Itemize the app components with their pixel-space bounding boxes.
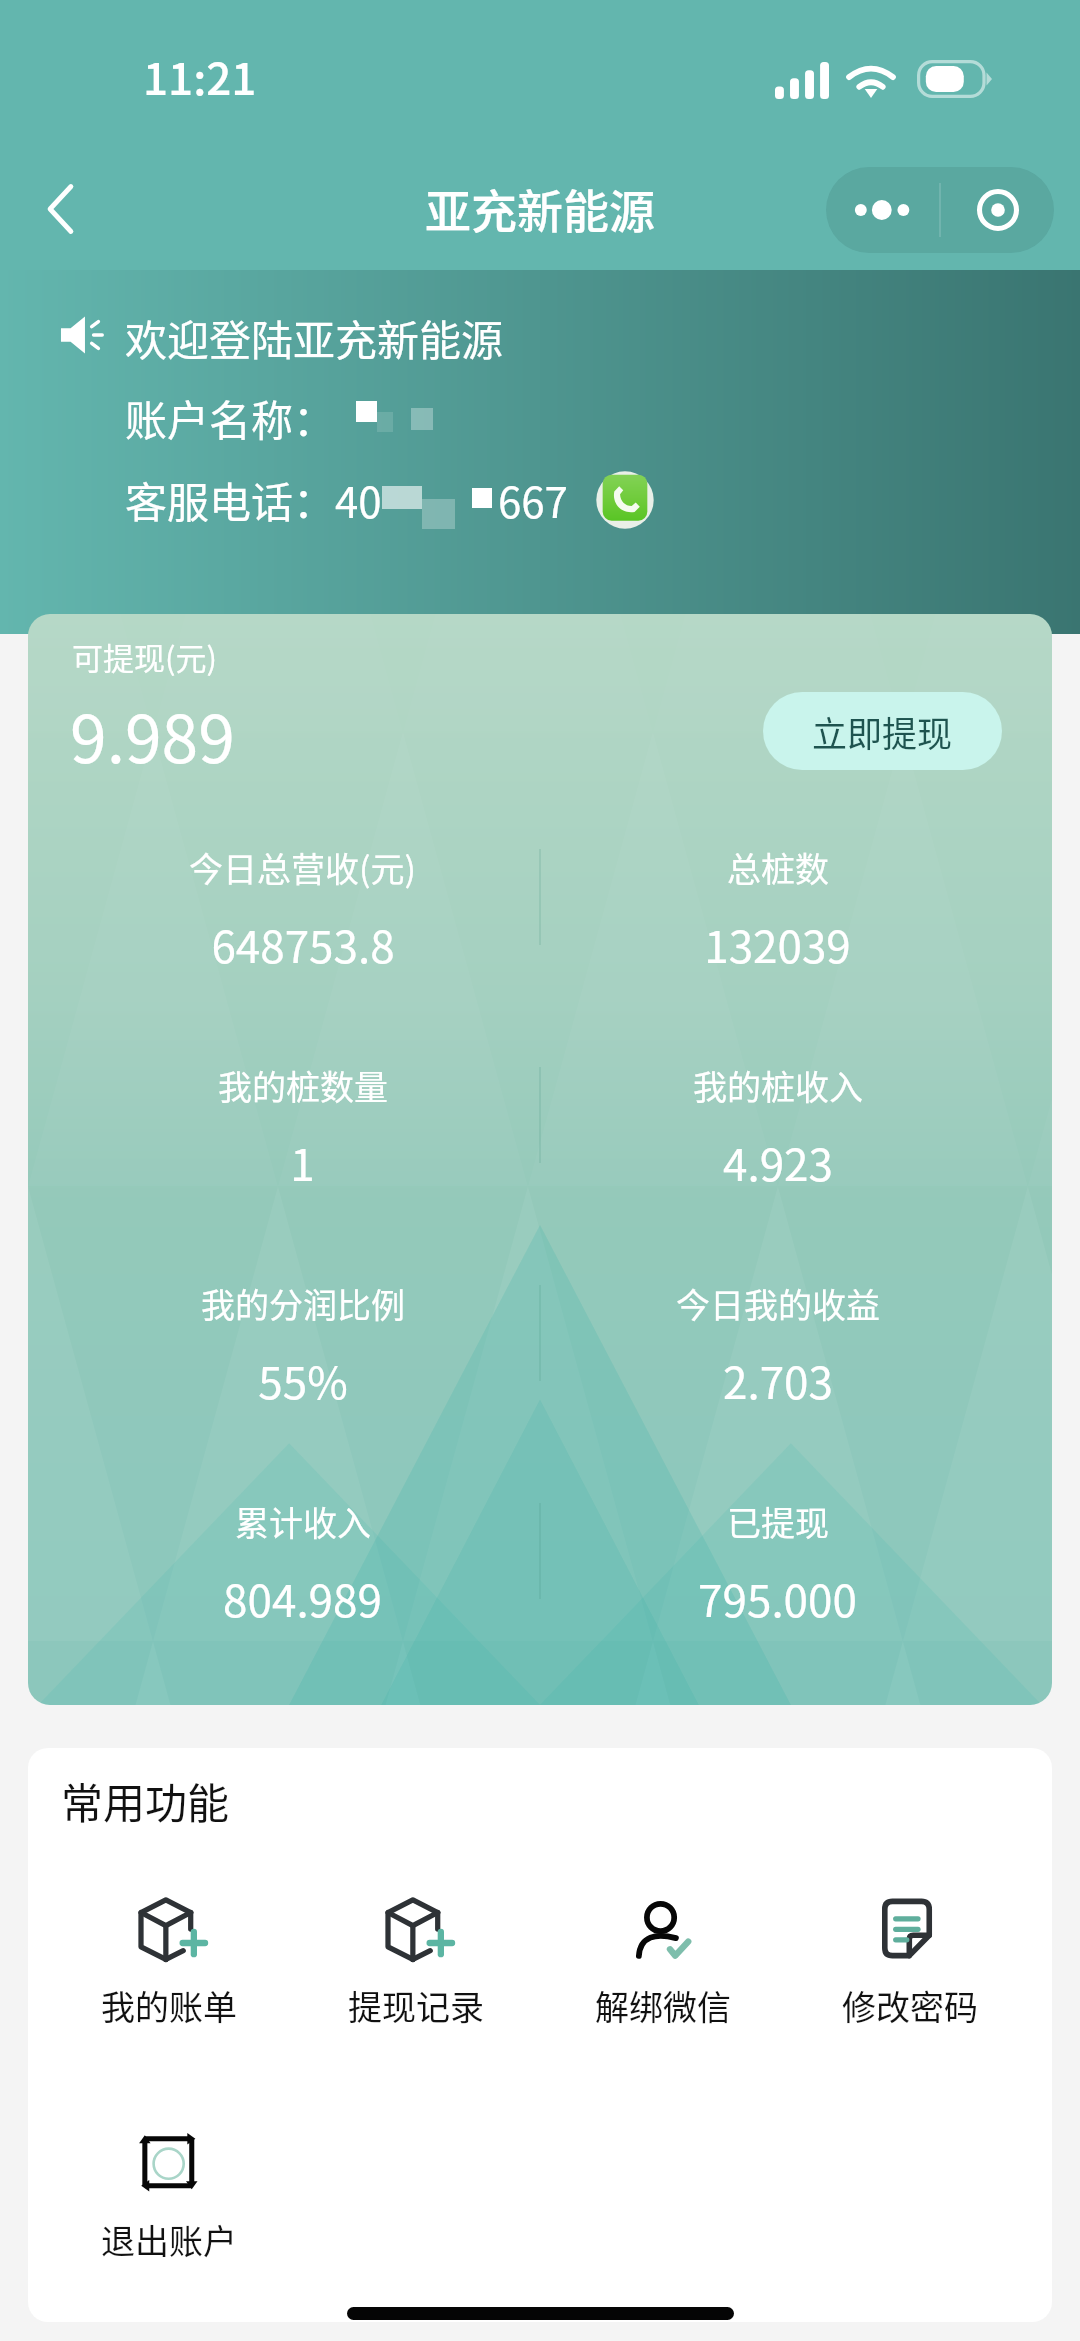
button[interactable]: 立即提现 [763, 692, 1002, 770]
button[interactable]: 解绑微信 [539, 1888, 786, 2036]
staticText: 亚充新能源 [425, 175, 655, 242]
staticText: 累计收入 [235, 1497, 371, 1546]
staticText: 667 [498, 469, 568, 530]
staticText: 我的账单 [101, 1981, 237, 2030]
staticText: 客服电话：40 [125, 469, 382, 530]
staticText: 总桩数 [727, 843, 829, 892]
button[interactable]: Close mini program [941, 167, 1054, 253]
staticText: 648753.8 [211, 912, 395, 973]
staticText: 今日我的收益 [676, 1279, 880, 1328]
staticText: 修改密码 [842, 1981, 978, 2030]
button[interactable]: 修改密码 [786, 1888, 1033, 2036]
staticText: 今日总营收(元) [189, 843, 416, 892]
button[interactable]: More options [826, 167, 939, 253]
button[interactable]: Back [16, 165, 104, 253]
button[interactable]: 我的账单 [45, 1888, 292, 2036]
staticText: 欢迎登陆亚充新能源 [125, 307, 504, 368]
staticText: 55% [258, 1348, 348, 1409]
button[interactable]: 退出账户 [45, 2122, 292, 2270]
staticText: 2.703 [723, 1348, 833, 1409]
staticText: 4.923 [723, 1130, 833, 1191]
staticText: 795.000 [698, 1566, 857, 1627]
staticText: 804.989 [223, 1566, 382, 1627]
staticText: 11:21 [143, 44, 257, 108]
staticText: 解绑微信 [595, 1981, 731, 2030]
staticText: 提现记录 [348, 1981, 484, 2030]
staticText: 我的桩收入 [693, 1061, 863, 1110]
staticText: 1 [290, 1130, 315, 1191]
staticText: 我的桩数量 [218, 1061, 388, 1110]
staticText: 132039 [704, 912, 851, 973]
staticText: 退出账户 [101, 2215, 237, 2264]
staticText: 我的分润比例 [201, 1279, 405, 1328]
staticText: 立即提现 [812, 706, 953, 757]
staticText: 常用功能 [61, 1770, 230, 1831]
button[interactable]: Call customer service [596, 471, 654, 529]
button[interactable]: 提现记录 [292, 1888, 539, 2036]
staticText: 9.989 [70, 686, 235, 782]
staticText: 账户名称： [125, 387, 336, 448]
staticText: 可提现(元) [72, 634, 217, 679]
staticText: 已提现 [727, 1497, 829, 1546]
